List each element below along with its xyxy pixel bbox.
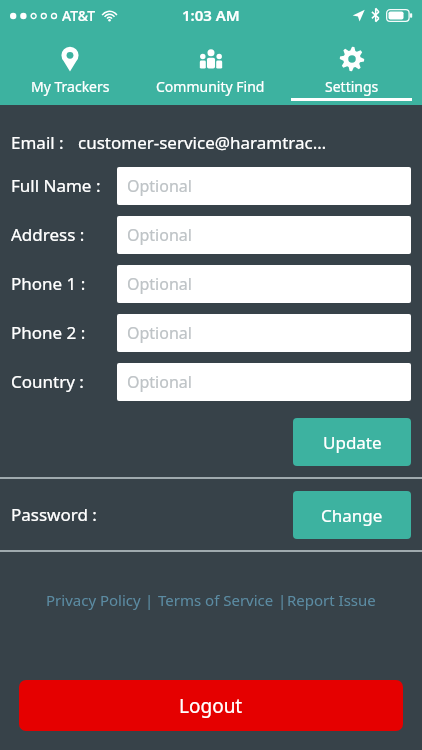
button[interactable]: Change	[293, 491, 411, 539]
staticText: Country :	[11, 370, 84, 393]
button[interactable]: Update	[293, 418, 411, 466]
staticText: |	[141, 590, 158, 610]
staticText: Update	[323, 431, 382, 454]
staticText: Optional	[127, 224, 192, 246]
staticText: Optional	[127, 322, 192, 344]
button[interactable]: My Trackers	[0, 30, 140, 105]
staticText: Change	[321, 504, 383, 527]
button[interactable]: Optional	[117, 167, 411, 205]
button[interactable]: Terms of Service	[158, 590, 274, 610]
staticText: Phone 1 :	[11, 272, 86, 295]
staticText: Optional	[127, 371, 192, 393]
staticText: Terms of Service	[158, 590, 274, 610]
button[interactable]: Privacy Policy	[46, 590, 141, 610]
button[interactable]: Optional	[117, 363, 411, 401]
button[interactable]: Settings	[281, 30, 422, 105]
staticText: 1:03 AM	[182, 5, 240, 25]
staticText: customer-service@haramtrac…	[78, 131, 327, 154]
button[interactable]: Optional	[117, 265, 411, 303]
staticText: Privacy Policy	[46, 590, 141, 610]
staticText: My Trackers	[31, 77, 110, 96]
staticText: Full Name :	[11, 174, 101, 197]
staticText: Community Find	[156, 77, 265, 96]
button[interactable]: Optional	[117, 216, 411, 254]
staticText: Address :	[11, 223, 85, 246]
staticText: Report Issue	[287, 590, 376, 610]
staticText: |	[274, 590, 287, 610]
button[interactable]: Report Issue	[287, 590, 376, 610]
button[interactable]: Logout	[19, 680, 403, 731]
staticText: Phone 2 :	[11, 321, 86, 344]
staticText: Optional	[127, 273, 192, 295]
staticText: Password :	[11, 503, 97, 526]
staticText: Email :	[11, 131, 64, 154]
button[interactable]: Community Find	[140, 30, 281, 105]
staticText: Optional	[127, 175, 192, 197]
staticText: Settings	[325, 77, 379, 96]
staticText: Logout	[179, 693, 243, 719]
button[interactable]: Optional	[117, 314, 411, 352]
staticText: AT&T	[62, 6, 96, 25]
